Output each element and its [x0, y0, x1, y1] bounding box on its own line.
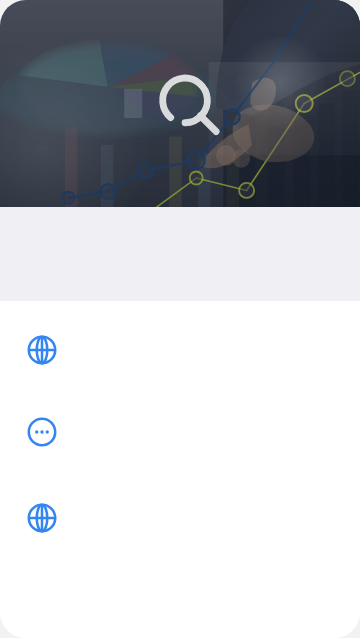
button[interactable]: Language [20, 328, 64, 372]
button[interactable]: More options [20, 410, 64, 454]
button[interactable]: Website [20, 496, 64, 540]
